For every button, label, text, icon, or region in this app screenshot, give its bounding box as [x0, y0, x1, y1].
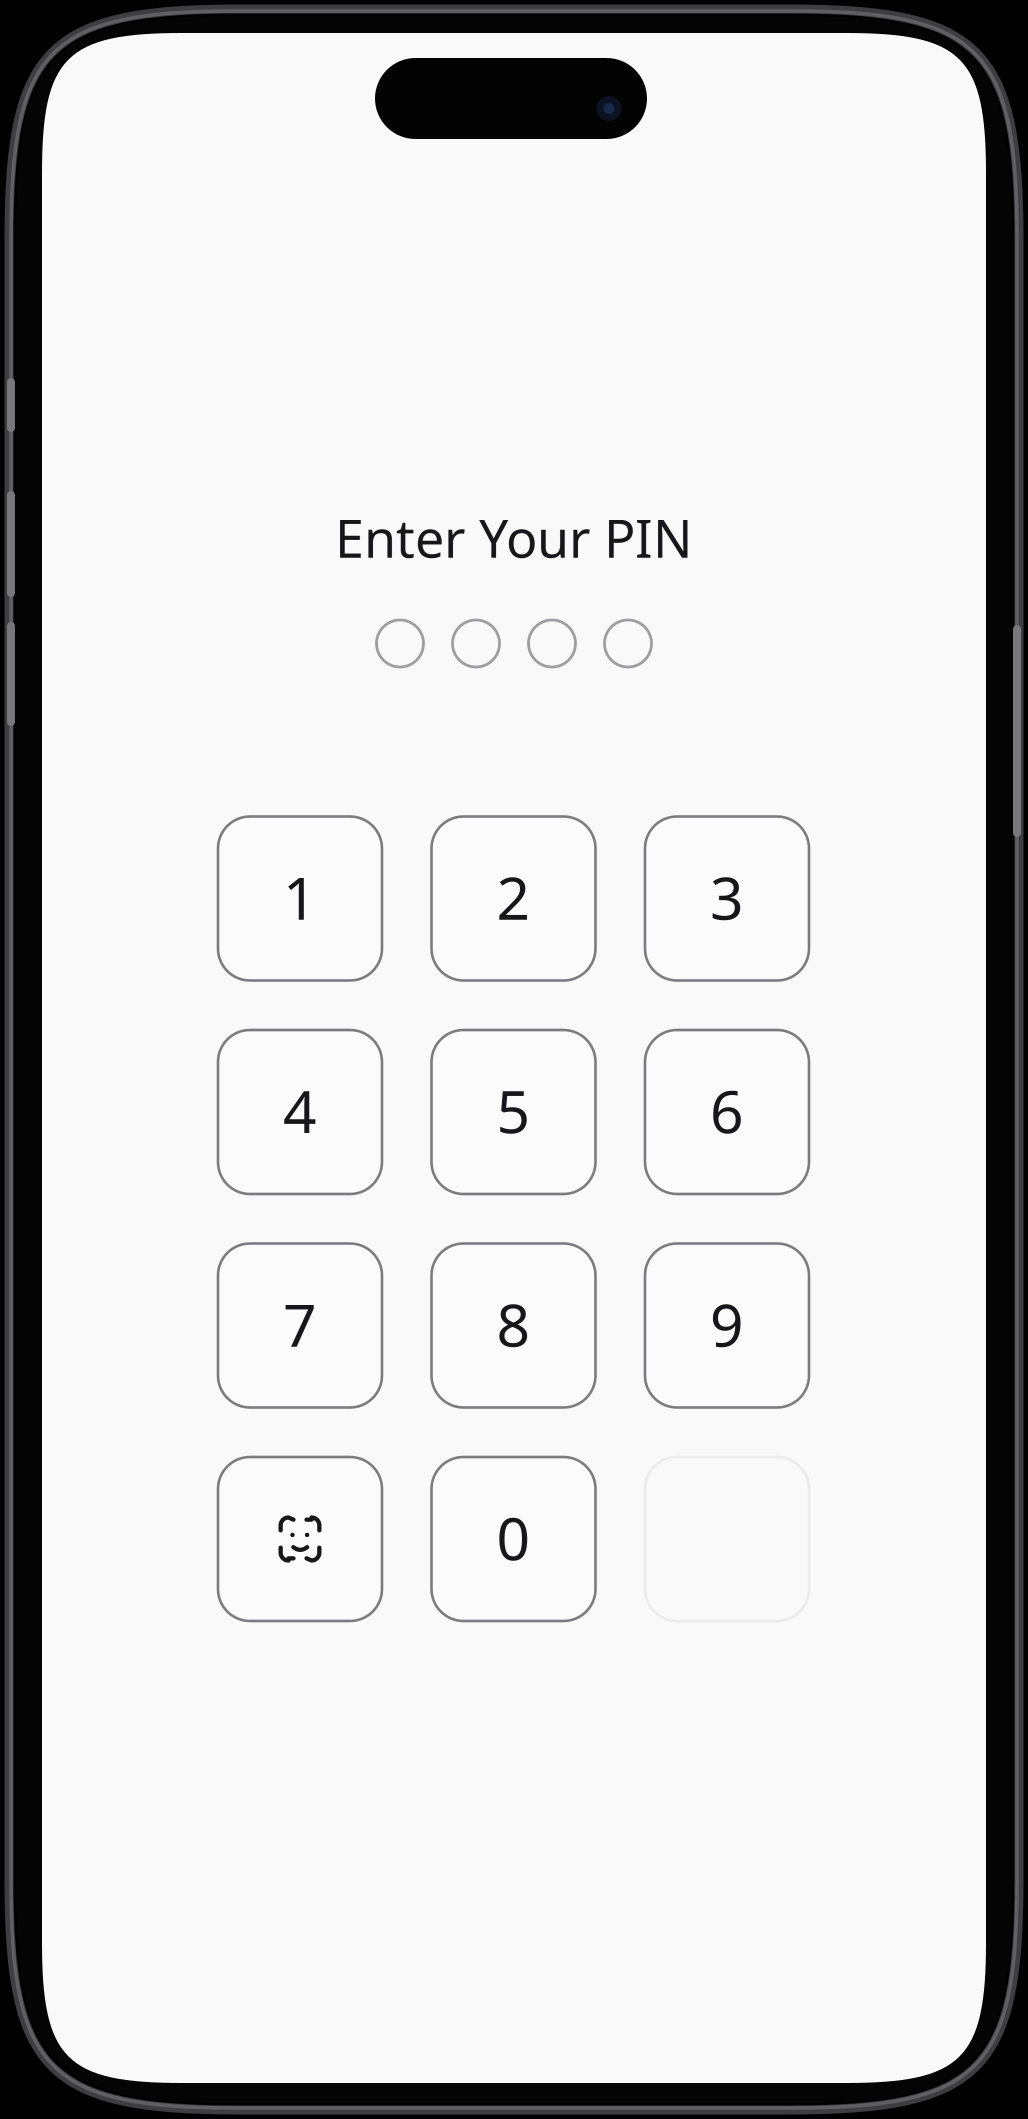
button[interactable]: 1: [218, 816, 382, 980]
staticText: 2: [496, 858, 530, 936]
button[interactable]: Unlock with Face ID: [218, 1457, 382, 1621]
staticText: 6: [710, 1071, 744, 1149]
staticText: 5: [496, 1071, 530, 1149]
staticText: Enter Your PIN: [335, 503, 693, 572]
staticText: 0: [496, 1498, 530, 1576]
button[interactable]: 4: [218, 1030, 382, 1194]
staticText: 4: [283, 1071, 317, 1149]
button[interactable]: 2: [431, 816, 595, 980]
button[interactable]: 5: [431, 1030, 595, 1194]
staticText: 1: [283, 858, 317, 936]
staticText: 9: [710, 1285, 744, 1363]
button[interactable]: 8: [431, 1243, 595, 1407]
button[interactable]: 3: [645, 816, 809, 980]
staticText: 7: [283, 1285, 317, 1363]
staticText: 8: [496, 1285, 530, 1363]
button[interactable]: 7: [218, 1243, 382, 1407]
staticText: 3: [710, 858, 744, 936]
button[interactable]: 9: [645, 1243, 809, 1407]
button[interactable]: 0: [431, 1457, 595, 1621]
button[interactable]: 6: [645, 1030, 809, 1194]
